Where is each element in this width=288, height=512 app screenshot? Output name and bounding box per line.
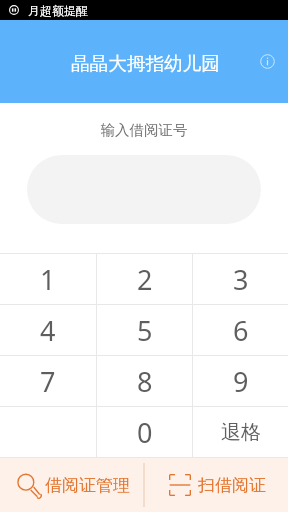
staticText: 4	[40, 312, 56, 349]
staticText: 5	[137, 312, 153, 349]
button[interactable]: 4	[0, 305, 96, 355]
button[interactable]: 退格	[193, 407, 288, 457]
staticText: 输入借阅证号	[0, 121, 288, 139]
staticText: 退格	[221, 420, 261, 445]
button[interactable]: 3	[193, 254, 288, 304]
button[interactable]: 7	[0, 356, 96, 406]
staticText: 1	[40, 261, 56, 298]
button[interactable]: 扫借阅证	[146, 458, 288, 512]
staticText: 6	[233, 312, 249, 349]
staticText: 晶晶大拇指幼儿园	[71, 52, 220, 75]
button[interactable]: 1	[0, 254, 96, 304]
button[interactable]: 借阅证管理	[1, 458, 144, 512]
staticText: 3	[233, 261, 249, 298]
button[interactable]: 8	[97, 356, 192, 406]
staticText: 扫借阅证	[198, 475, 266, 496]
button[interactable]: 9	[193, 356, 288, 406]
staticText: 0	[137, 414, 153, 451]
button[interactable]: 5	[97, 305, 192, 355]
button[interactable]: 6	[193, 305, 288, 355]
staticText: 7	[40, 363, 56, 400]
button[interactable]: 0	[97, 407, 192, 457]
staticText: 9	[233, 363, 249, 400]
button[interactable]: Info	[250, 44, 284, 78]
staticText: 借阅证管理	[45, 475, 130, 496]
staticText: 2	[137, 261, 153, 298]
staticText: 月超额提醒	[28, 3, 88, 18]
staticText: 8	[137, 363, 153, 400]
button[interactable]: 2	[97, 254, 192, 304]
